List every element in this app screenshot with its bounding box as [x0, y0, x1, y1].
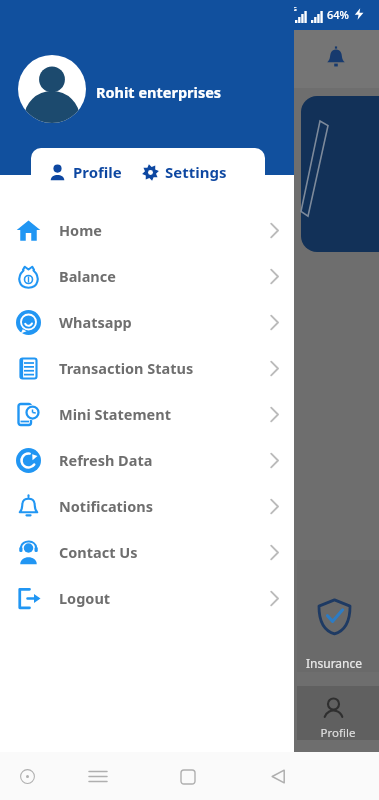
staticText: Contact Us — [59, 542, 269, 562]
staticText: Settings — [165, 162, 227, 182]
button[interactable]: Home — [181, 770, 195, 784]
button[interactable]: Home — [0, 207, 294, 253]
staticText: Rohit enterprises — [96, 82, 222, 102]
staticText: Home — [59, 220, 269, 240]
button[interactable]: Whatsapp — [0, 299, 294, 345]
staticText: Profile — [73, 162, 122, 182]
button[interactable]: Logout — [0, 575, 294, 621]
button[interactable]: Back — [271, 769, 286, 784]
button[interactable]: Settings — [142, 148, 265, 196]
staticText: 64% — [327, 7, 349, 22]
staticText: Profile — [297, 725, 379, 741]
button[interactable]: Balance — [0, 253, 294, 299]
staticText: Logout — [59, 588, 269, 608]
button[interactable]: Profile — [31, 148, 142, 196]
button[interactable]: Assistant — [20, 769, 35, 784]
button[interactable]: Transaction Status — [0, 345, 294, 391]
button[interactable]: Recents — [89, 770, 107, 783]
button[interactable]: Mini Statement — [0, 391, 294, 437]
staticText: Refresh Data — [59, 450, 269, 470]
staticText: Insurance — [288, 655, 379, 671]
staticText: 4G — [289, 5, 297, 13]
staticText: Transaction Status — [59, 358, 269, 378]
button[interactable]: Refresh Data — [0, 437, 294, 483]
staticText: Notifications — [59, 496, 269, 516]
button[interactable]: Contact Us — [0, 529, 294, 575]
staticText: Whatsapp — [59, 312, 269, 332]
staticText: Mini Statement — [59, 404, 269, 424]
button[interactable]: Notifications — [0, 483, 294, 529]
staticText: Balance — [59, 266, 269, 286]
